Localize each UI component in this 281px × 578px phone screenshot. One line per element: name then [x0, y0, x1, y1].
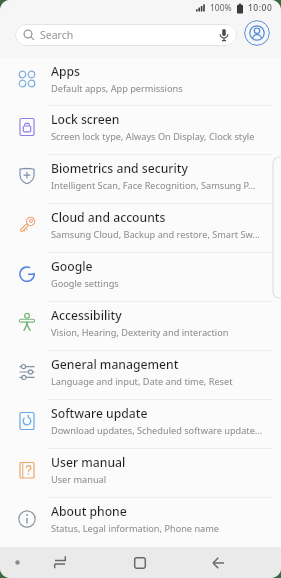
staticText: General management	[51, 356, 179, 373]
staticText: Download updates, Scheduled software upd…	[51, 424, 263, 437]
button[interactable]: Apps	[0, 58, 281, 106]
button[interactable]	[11, 556, 24, 569]
staticText: Biometrics and security	[51, 160, 188, 177]
button[interactable]: Google	[0, 253, 281, 302]
staticText: Intelligent Scan, Face Recognition, Sams…	[51, 179, 256, 192]
staticText: Status, Legal information, Phone name	[51, 522, 220, 535]
button[interactable]	[128, 547, 152, 578]
staticText: 100%	[210, 2, 232, 14]
button[interactable]	[206, 547, 230, 578]
button[interactable]	[244, 20, 270, 46]
staticText: Screen lock type, Always On Display, Clo…	[51, 130, 255, 143]
staticText: Search	[40, 28, 74, 42]
staticText: Cloud and accounts	[51, 209, 166, 226]
staticText: Samsung Cloud, Backup and restore, Smart…	[51, 228, 260, 241]
button[interactable]: User manual	[0, 449, 281, 498]
button[interactable]: Lock screen	[0, 106, 281, 155]
staticText: Software update	[51, 405, 148, 422]
button[interactable]: Accessibility	[0, 302, 281, 351]
staticText: Google settings	[51, 277, 119, 290]
button[interactable]: Search	[15, 24, 237, 46]
staticText: Apps	[51, 63, 81, 80]
staticText: Vision, Hearing, Dexterity and interacti…	[51, 326, 229, 339]
staticText: Google	[51, 258, 93, 275]
staticText: User manual	[51, 454, 126, 471]
button[interactable]: Cloud and accounts	[0, 204, 281, 253]
staticText: Default apps, App permissions	[51, 82, 183, 95]
staticText: About phone	[51, 503, 127, 520]
button[interactable]: About phone	[0, 498, 281, 547]
staticText: Language and input, Date and time, Reset	[51, 375, 233, 388]
staticText: User manual	[51, 473, 107, 486]
staticText: Accessibility	[51, 307, 122, 324]
button[interactable]: Software update	[0, 400, 281, 449]
staticText: Lock screen	[51, 111, 120, 128]
staticText: 10:00	[248, 2, 273, 14]
button[interactable]: General management	[0, 351, 281, 400]
button[interactable]	[48, 547, 72, 578]
button[interactable]: Biometrics and security	[0, 155, 281, 204]
